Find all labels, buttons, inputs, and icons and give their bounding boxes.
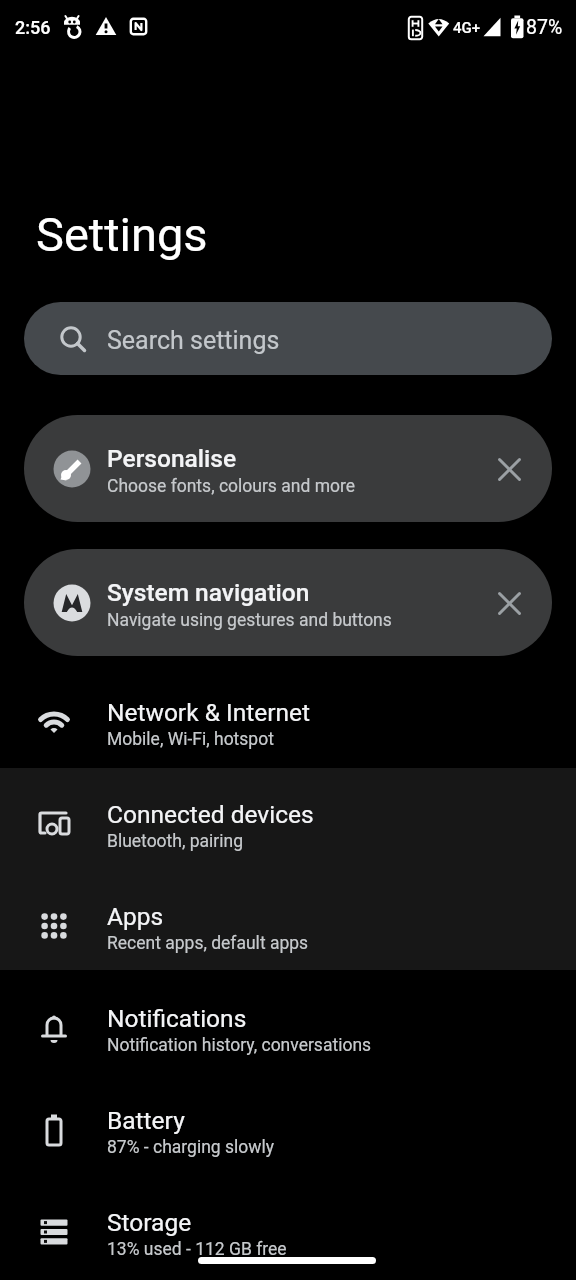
staticText: Apps bbox=[107, 902, 164, 931]
button[interactable]: Storage bbox=[0, 1181, 576, 1280]
button[interactable]: Connected devices bbox=[0, 773, 576, 875]
staticText: Settings bbox=[36, 207, 208, 262]
staticText: 2:56 bbox=[15, 17, 51, 38]
button[interactable] bbox=[499, 592, 521, 614]
staticText: Connected devices bbox=[107, 800, 314, 829]
button[interactable]: Network & Internet bbox=[0, 671, 576, 773]
staticText: 4G+ bbox=[453, 19, 481, 37]
button[interactable]: Personalise bbox=[24, 415, 552, 522]
staticText: Mobile, Wi-Fi, hotspot bbox=[107, 729, 274, 750]
staticText: Navigate using gestures and buttons bbox=[107, 610, 392, 631]
staticText: Storage bbox=[107, 1208, 192, 1237]
staticText: Search settings bbox=[107, 326, 280, 355]
staticText: System navigation bbox=[107, 578, 310, 607]
button[interactable]: Search settings bbox=[24, 302, 552, 375]
button[interactable]: System navigation bbox=[24, 549, 552, 656]
staticText: Personalise bbox=[107, 444, 237, 473]
button[interactable]: Battery bbox=[0, 1079, 576, 1181]
staticText: 87% bbox=[526, 16, 563, 39]
staticText: 87% - charging slowly bbox=[107, 1137, 274, 1158]
button[interactable] bbox=[499, 458, 521, 480]
staticText: Network & Internet bbox=[107, 698, 311, 727]
staticText: Recent apps, default apps bbox=[107, 933, 309, 954]
staticText: Notification history, conversations bbox=[107, 1035, 372, 1056]
button[interactable]: Apps bbox=[0, 875, 576, 977]
staticText: 13% used - 112 GB free bbox=[107, 1239, 287, 1260]
staticText: Battery bbox=[107, 1106, 185, 1135]
staticText: Choose fonts, colours and more bbox=[107, 476, 356, 497]
staticText: Notifications bbox=[107, 1004, 247, 1033]
button[interactable]: Notifications bbox=[0, 977, 576, 1079]
staticText: Bluetooth, pairing bbox=[107, 831, 244, 852]
